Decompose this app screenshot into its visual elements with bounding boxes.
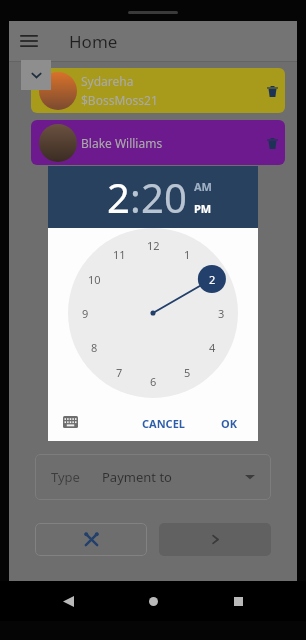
staticText: Blake Williams [81,135,163,151]
staticText: PM [194,201,212,216]
button[interactable]: PM [194,201,212,216]
staticText: 3 [218,306,225,321]
button[interactable]: CANCEL [134,412,193,435]
staticText: $BossMoss21 [81,92,158,108]
button[interactable]: Type [35,454,271,500]
staticText: 10 [88,272,101,287]
button[interactable]: Tools [35,523,147,556]
staticText: 9 [82,306,89,321]
staticText: Type [51,468,80,486]
staticText: 20 [141,170,187,224]
button[interactable]: 20 [141,170,187,224]
button[interactable]: 2 [107,170,130,224]
button[interactable]: Home [136,584,170,618]
button[interactable]: Delete Sydareha [259,78,285,104]
staticText: 4 [209,340,216,355]
staticText: 6 [150,374,157,389]
button[interactable] [39,72,77,110]
staticText: Sydareha [81,73,134,89]
staticText: 1 [184,247,191,262]
button[interactable]: Open navigation menu [9,21,49,61]
staticText: 7 [116,365,123,380]
staticText: 2 [209,272,216,287]
button[interactable]: OK [213,412,246,435]
button[interactable]: Switch to text input mode [56,409,84,437]
button[interactable]: Delete Blake Williams [259,130,285,156]
button[interactable]: Blake Williams [31,120,285,165]
button[interactable]: Collapse [21,60,51,90]
button[interactable]: Sydareha [31,68,285,113]
staticText: Payment to [102,468,172,486]
staticText: OK [221,416,238,431]
button[interactable]: 12 [68,228,238,398]
staticText: : [130,170,141,224]
staticText: CANCEL [142,416,185,431]
staticText: AM [194,179,212,194]
button[interactable]: AM [194,179,212,194]
button[interactable] [39,124,77,162]
staticText: 8 [91,340,98,355]
staticText: Home [69,30,118,53]
staticText: 5 [184,365,191,380]
staticText: 11 [113,247,126,262]
button[interactable]: Back [51,584,85,618]
staticText: 2 [107,170,130,224]
button[interactable]: Recent apps [221,584,255,618]
staticText: 12 [147,238,160,253]
